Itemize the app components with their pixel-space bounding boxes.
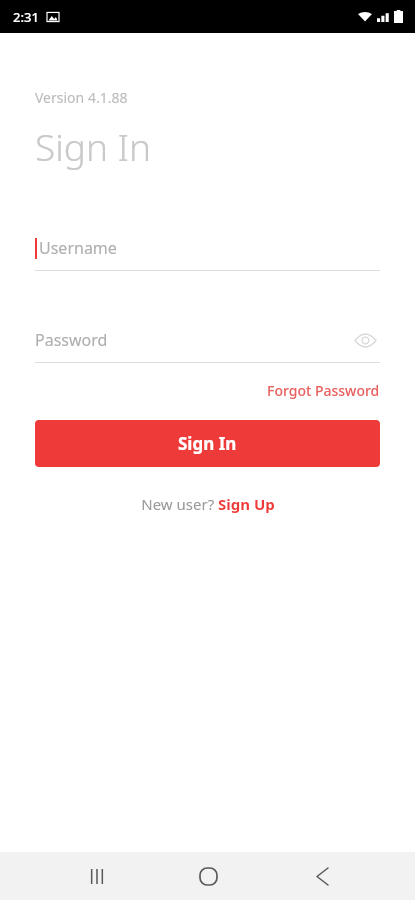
staticText: New user? Sign Up [141,494,275,514]
staticText: Username [39,237,117,259]
staticText: Sign In [35,121,152,171]
button[interactable]: Forgot Password [267,377,380,404]
button[interactable]: Recent apps [75,854,119,898]
button[interactable]: Sign In [35,420,380,467]
staticText: Version 4.1.88 [35,88,128,107]
button[interactable]: Home [186,854,230,898]
button[interactable]: Back [300,854,344,898]
staticText: Forgot Password [267,381,380,400]
button[interactable]: Password [35,317,380,363]
staticText: Password [35,329,108,351]
button[interactable]: Username [35,225,380,271]
staticText: Sign In [178,432,237,455]
button[interactable]: New user? Sign Up [137,490,279,518]
button[interactable]: Show password [350,325,380,355]
staticText: 2:31 [13,8,39,26]
